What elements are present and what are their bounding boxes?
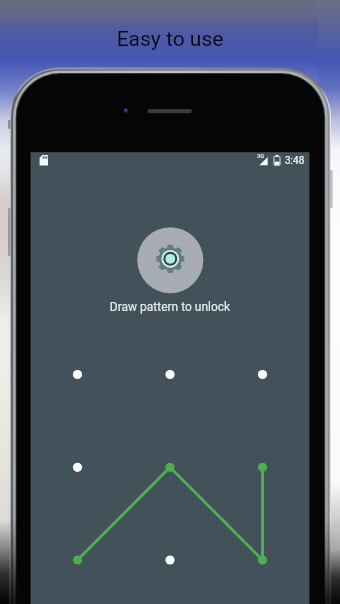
staticText: 3G xyxy=(257,152,265,159)
staticText: 3:48 xyxy=(285,155,305,167)
staticText: Draw pattern to unlock xyxy=(0,300,340,604)
staticText: Easy to use xyxy=(0,27,340,604)
button[interactable]: Settings xyxy=(137,227,203,293)
